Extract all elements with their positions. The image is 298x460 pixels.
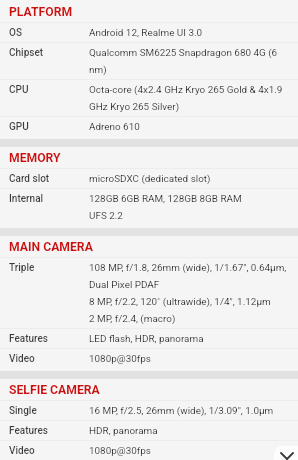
staticText: CPU — [9, 84, 29, 96]
staticText: Features — [9, 425, 48, 437]
staticText: MAIN CAMERA — [9, 240, 93, 254]
staticText: Single — [9, 405, 37, 417]
staticText: Chipset — [9, 47, 44, 59]
staticText: OS — [9, 27, 22, 39]
staticText: HDR, panorama — [89, 425, 158, 437]
staticText: Triple — [9, 262, 35, 274]
staticText: Qualcomm SM6225 Snapdragon 680 4G (6 nm) — [89, 47, 291, 76]
staticText: Features — [9, 333, 48, 345]
staticText: 108 MP, f/1.8, 26mm (wide), 1/1.67", 0.6… — [89, 262, 291, 325]
staticText: Octa-core (4x2.4 GHz Kryo 265 Gold & 4x1… — [89, 84, 291, 113]
button[interactable]: Scroll down — [274, 446, 298, 460]
staticText: Internal — [9, 193, 44, 205]
button[interactable]: Features — [0, 425, 298, 437]
staticText: PLATFORM — [9, 5, 73, 19]
button[interactable]: Triple — [0, 262, 298, 325]
button[interactable]: Video — [0, 353, 298, 365]
staticText: 128GB 6GB RAM, 128GB 8GB RAM UFS 2.2 — [89, 193, 242, 222]
button[interactable]: Chipset — [0, 47, 298, 76]
staticText: SELFIE CAMERA — [9, 383, 100, 397]
staticText: Video — [9, 445, 35, 457]
staticText: 1080p@30fps — [89, 445, 151, 457]
staticText: Adreno 610 — [89, 121, 140, 133]
staticText: Card slot — [9, 173, 50, 185]
button[interactable]: Video — [0, 445, 298, 457]
staticText: Video — [9, 353, 35, 365]
button[interactable]: Single — [0, 405, 298, 417]
button[interactable]: Card slot — [0, 173, 298, 185]
button[interactable]: Internal — [0, 193, 298, 222]
button[interactable]: CPU — [0, 84, 298, 113]
staticText: 1080p@30fps — [89, 353, 151, 365]
button[interactable]: Features — [0, 333, 298, 345]
staticText: LED flash, HDR, panorama — [89, 333, 204, 345]
button[interactable]: OS — [0, 27, 298, 39]
staticText: microSDXC (dedicated slot) — [89, 173, 211, 185]
staticText: Android 12, Realme UI 3.0 — [89, 27, 203, 39]
button[interactable]: GPU — [0, 121, 298, 133]
staticText: 16 MP, f/2.5, 26mm (wide), 1/3.09", 1.0µ… — [89, 405, 274, 417]
staticText: MEMORY — [9, 151, 61, 165]
staticText: GPU — [9, 121, 29, 133]
